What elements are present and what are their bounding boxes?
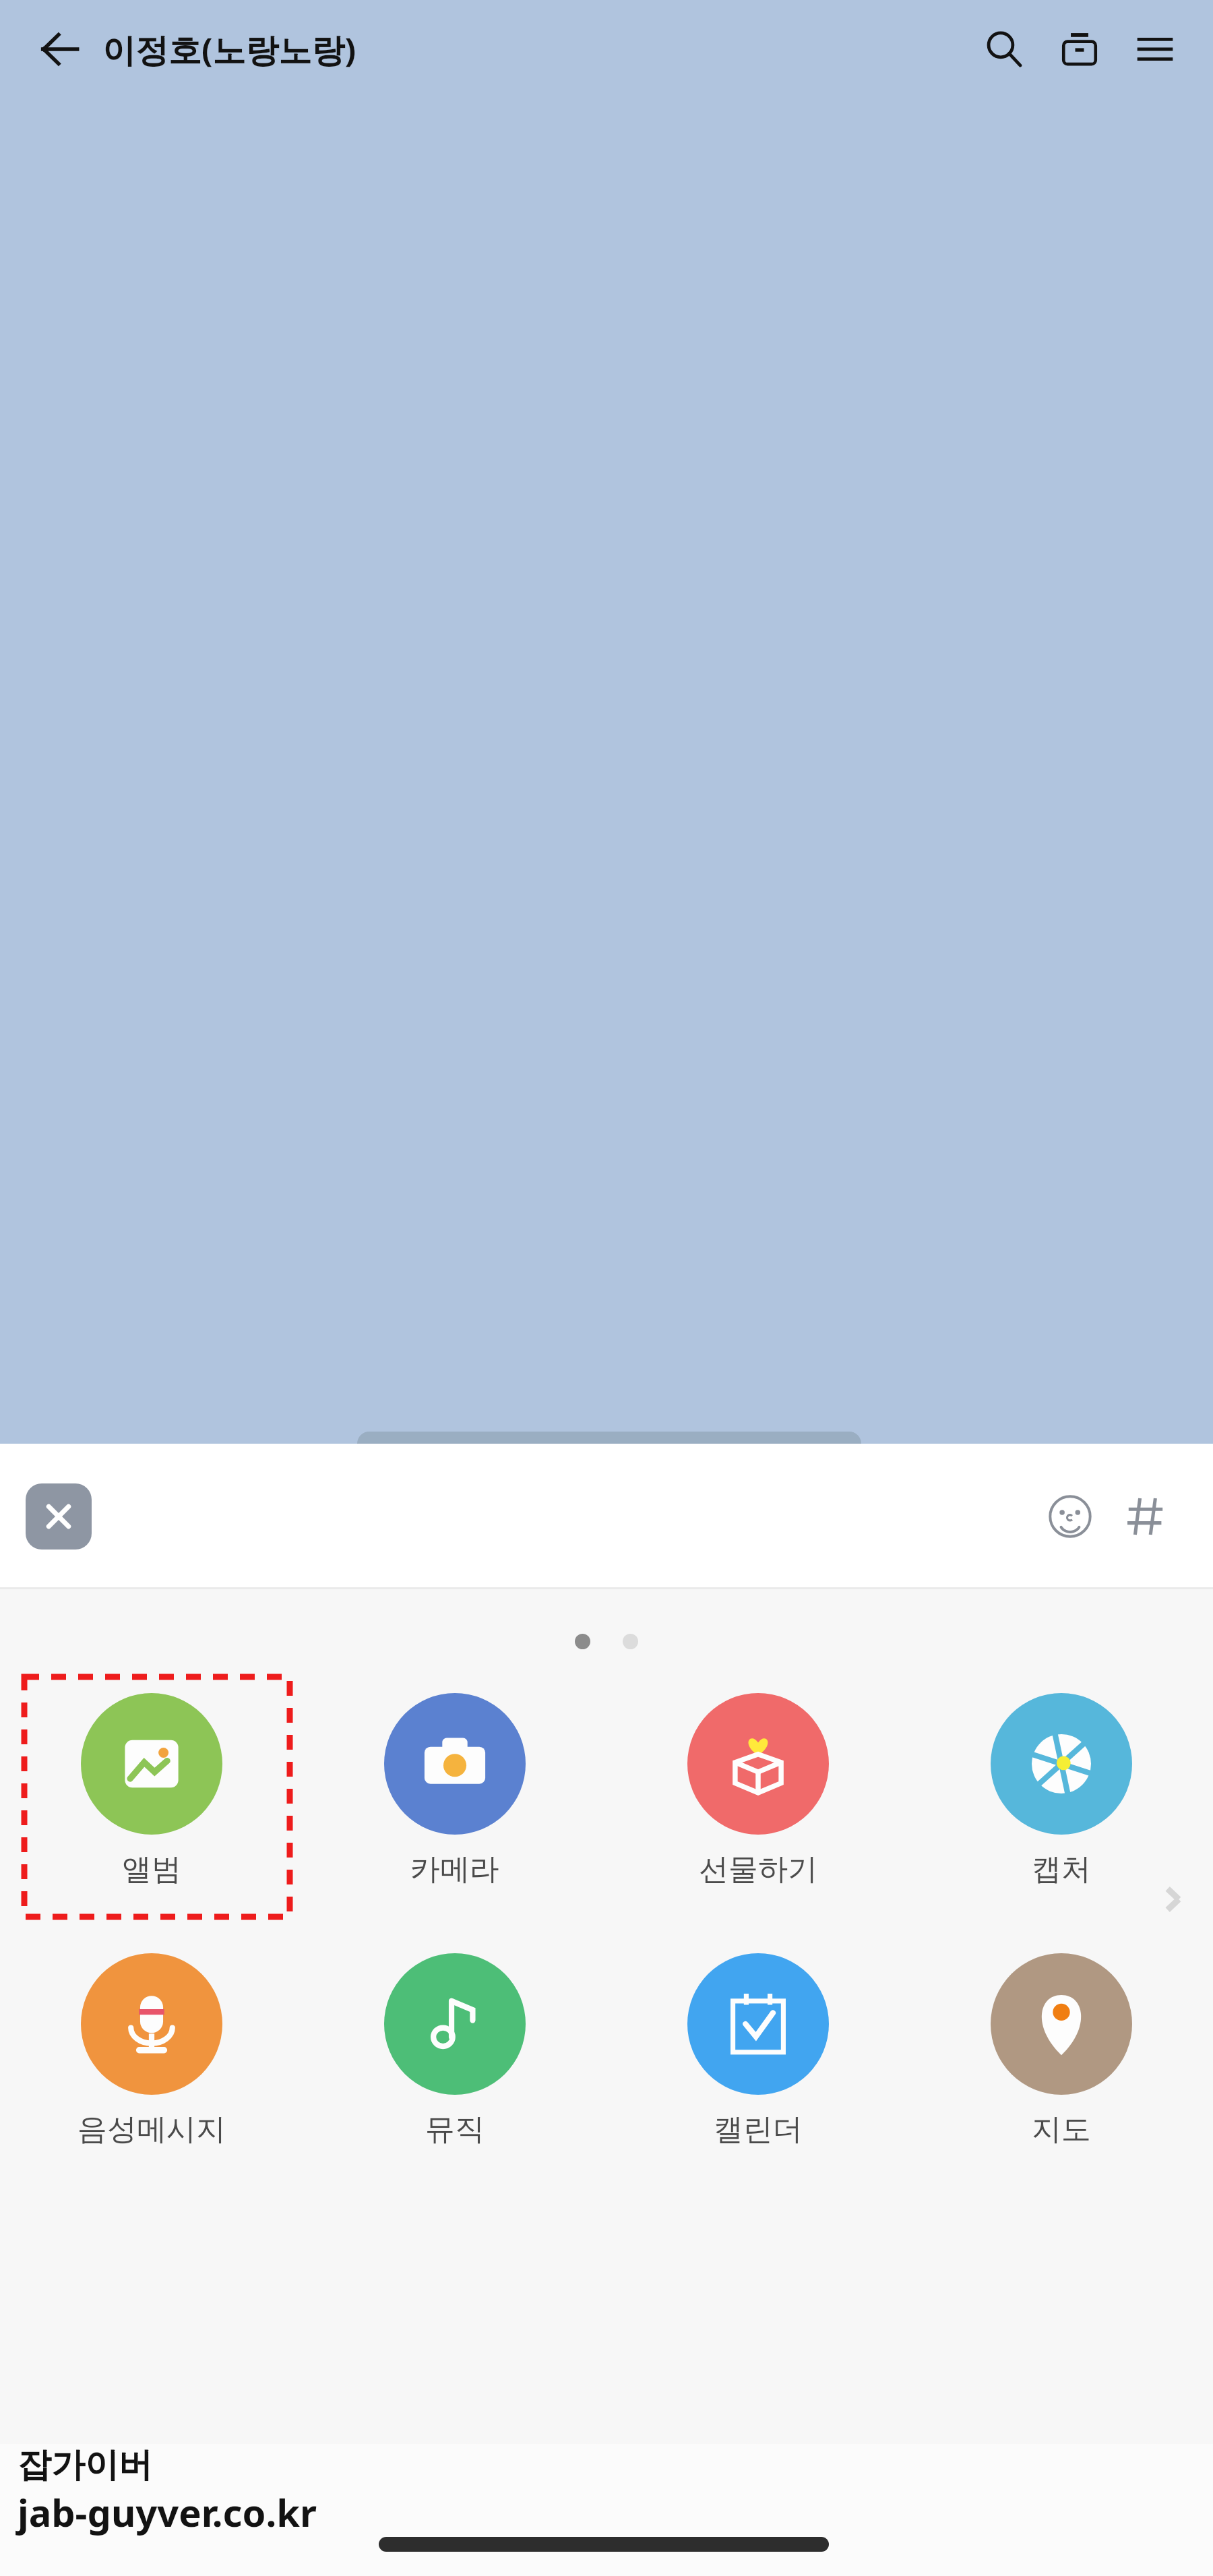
button[interactable]: 지도 — [991, 1953, 1132, 2148]
staticText: jab-guyver.co.kr — [18, 2486, 317, 2538]
button[interactable]: 앨범 — [81, 1693, 222, 1888]
button[interactable]: Close attachment panel — [26, 1483, 92, 1550]
button[interactable]: 캘린더 — [687, 1953, 829, 2148]
button[interactable]: Hashtag — [1108, 1479, 1183, 1554]
staticText: 선물하기 — [699, 1851, 817, 1888]
staticText: 카메라 — [410, 1851, 499, 1888]
button[interactable]: 캡처 — [991, 1693, 1132, 1888]
staticText: 음성메시지 — [77, 2111, 226, 2148]
button[interactable]: Back — [27, 17, 92, 82]
button[interactable]: 음성메시지 — [77, 1953, 226, 2148]
button[interactable]: 뮤직 — [384, 1953, 526, 2148]
button[interactable]: Emoticon — [1032, 1479, 1108, 1554]
staticText: 캡처 — [1032, 1851, 1091, 1888]
button[interactable]: 카메라 — [384, 1693, 526, 1888]
button[interactable]: Archive — [1042, 11, 1117, 87]
staticText: 캘린더 — [714, 2111, 803, 2148]
staticText: 이정호(노랑노랑) — [102, 27, 356, 72]
staticText: 잡가이버 — [18, 2444, 152, 2486]
staticText: 앨범 — [122, 1851, 181, 1888]
button[interactable]: Search — [966, 11, 1042, 87]
staticText: 지도 — [1032, 2111, 1091, 2148]
button[interactable]: Menu — [1117, 11, 1193, 87]
button[interactable]: Next page — [1146, 1872, 1200, 1926]
button[interactable]: 선물하기 — [687, 1693, 829, 1888]
staticText: 뮤직 — [425, 2111, 485, 2148]
